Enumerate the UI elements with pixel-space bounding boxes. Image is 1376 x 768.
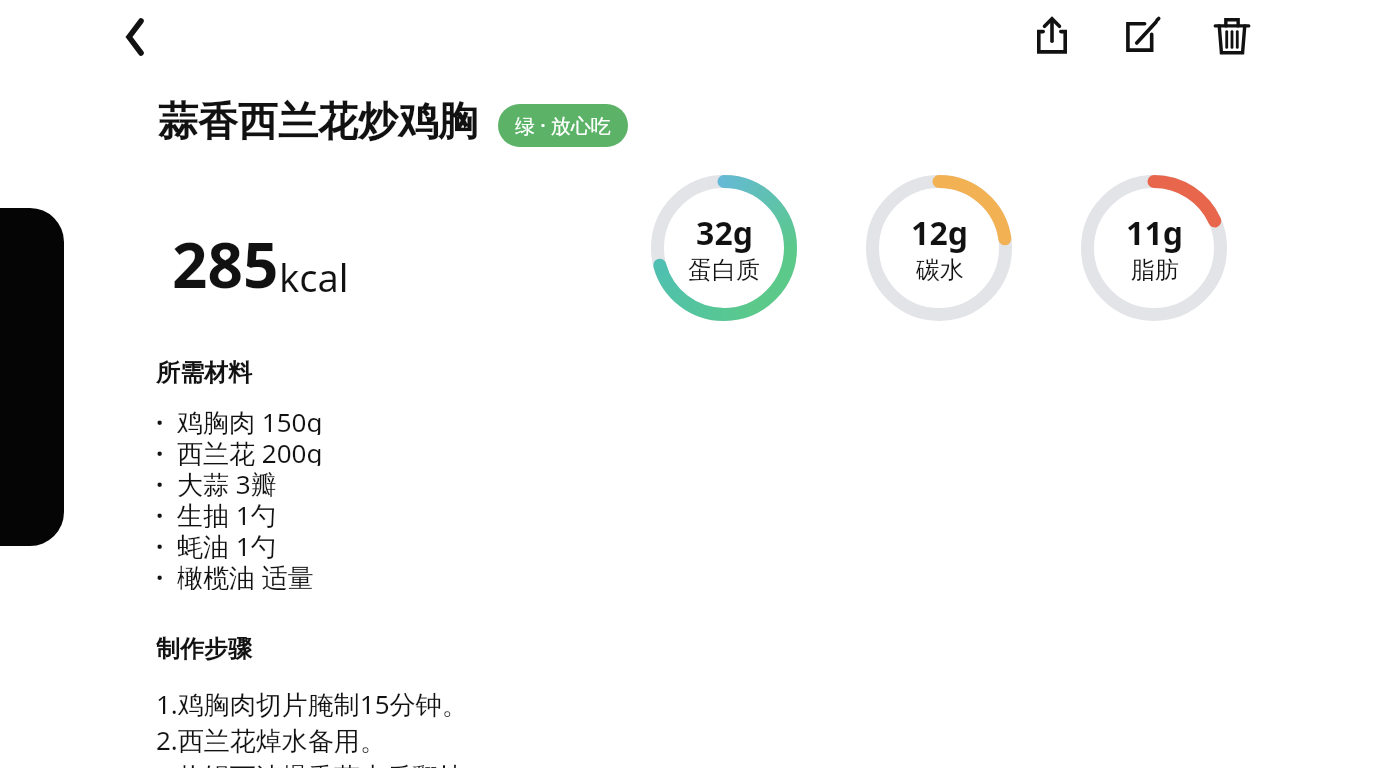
staticText: 绿 · 放心吃: [515, 112, 611, 139]
staticText: 3.热锅下油爆香蒜末后翻炒。: [156, 758, 490, 768]
button[interactable]: Delete: [1206, 10, 1258, 62]
button[interactable]: 11g: [1081, 175, 1227, 321]
staticText: 285: [172, 222, 279, 306]
button[interactable]: Edit: [1116, 10, 1168, 62]
staticText: 蒜香西兰花炒鸡胸: [158, 96, 478, 146]
staticText: 制作步骤: [156, 634, 252, 664]
staticText: 11g: [1126, 211, 1183, 255]
staticText: 32g: [696, 211, 753, 255]
staticText: ·: [156, 528, 164, 559]
staticText: ·: [156, 497, 164, 528]
button[interactable]: Share: [1026, 10, 1078, 62]
staticText: 12g: [911, 211, 968, 255]
staticText: 橄榄油 适量: [177, 559, 314, 590]
staticText: 大蒜 3瓣: [177, 466, 277, 497]
staticText: 西兰花 200g: [177, 435, 323, 466]
button[interactable]: 12g: [866, 175, 1012, 321]
staticText: 蚝油 1勺: [177, 528, 277, 559]
staticText: ·: [156, 404, 164, 435]
staticText: 鸡胸肉 150g: [177, 404, 323, 435]
staticText: 蛋白质: [688, 255, 760, 285]
staticText: 1.鸡胸肉切片腌制15分钟。: [156, 686, 468, 722]
staticText: ·: [156, 466, 164, 497]
staticText: ·: [156, 435, 164, 466]
button[interactable]: Back: [110, 12, 160, 62]
button[interactable]: 绿 · 放心吃: [498, 104, 628, 147]
staticText: ·: [156, 559, 164, 590]
staticText: 碳水: [916, 255, 964, 285]
staticText: 2.西兰花焯水备用。: [156, 722, 386, 758]
staticText: 所需材料: [156, 358, 252, 388]
button[interactable]: 32g: [651, 175, 797, 321]
staticText: 脂肪: [1131, 255, 1179, 285]
staticText: 生抽 1勺: [177, 497, 277, 528]
staticText: kcal: [279, 251, 349, 303]
